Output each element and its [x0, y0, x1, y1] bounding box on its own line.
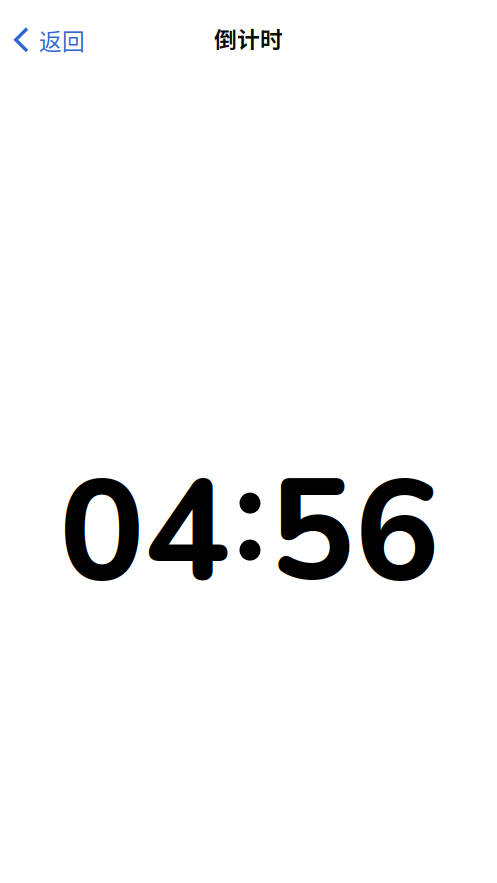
staticText: 56	[269, 436, 439, 629]
staticText: 04	[59, 436, 229, 629]
staticText: 倒计时	[214, 22, 283, 54]
staticText: 返回	[39, 24, 85, 56]
button[interactable]: 返回	[0, 14, 93, 64]
